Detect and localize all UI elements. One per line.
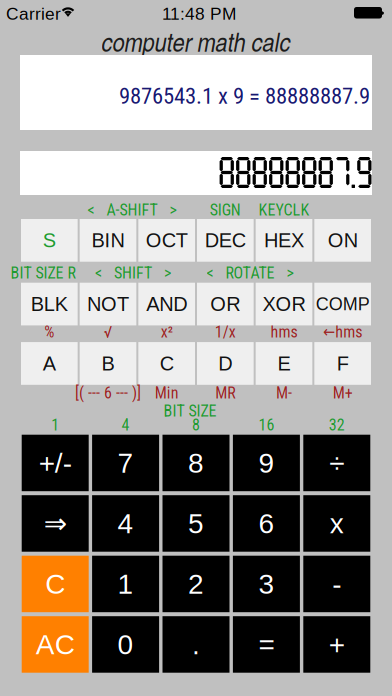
staticText: XOR [262, 293, 305, 315]
button[interactable]: ON [314, 219, 371, 262]
button[interactable]: 5 [162, 495, 229, 552]
staticText: ←hms [323, 323, 362, 341]
staticText: 4 [118, 508, 134, 539]
staticText: x [330, 508, 344, 539]
staticText: computer math calc [101, 23, 290, 59]
staticText: = [258, 629, 274, 660]
staticText: S [43, 229, 56, 251]
staticText: 1 [118, 568, 134, 600]
staticText: 4 [122, 416, 130, 434]
staticText: M+ [333, 384, 353, 402]
staticText: 8 [188, 447, 204, 479]
button[interactable]: HEX [256, 219, 312, 262]
button[interactable]: OR [197, 283, 254, 325]
staticText: Min [155, 384, 179, 402]
staticText: HEX [264, 229, 304, 251]
staticText: 2 [188, 568, 204, 600]
staticText: E [277, 352, 290, 375]
button[interactable]: ⇒ [22, 495, 89, 552]
button[interactable]: 6 [233, 495, 300, 552]
staticText: 9 [258, 447, 274, 479]
staticText: KEYCLK [258, 201, 309, 219]
button[interactable]: 7 [92, 435, 159, 491]
staticText: . [192, 629, 200, 660]
button[interactable]: + [303, 616, 370, 673]
button[interactable]: ÷ [303, 435, 370, 491]
button[interactable]: 1 [92, 556, 159, 612]
button[interactable]: 3 [233, 556, 300, 612]
button[interactable]: OCT [138, 219, 195, 262]
staticText: COMP [316, 294, 370, 314]
staticText: C [160, 352, 174, 375]
button[interactable]: - [303, 556, 370, 612]
staticText: SIGN [210, 201, 241, 219]
staticText: B [101, 352, 114, 375]
staticText: 6 [258, 508, 274, 539]
staticText: BIT SIZE R [10, 264, 75, 282]
button[interactable]: F [314, 342, 371, 385]
staticText: BIT SIZE [163, 402, 216, 420]
staticText: DEC [205, 229, 246, 251]
staticText: AC [36, 629, 75, 660]
staticText: OCT [146, 229, 188, 251]
button[interactable]: +/- [22, 435, 89, 491]
staticText: 11:48 PM [162, 4, 236, 23]
staticText: [( --- 6 --- )] [75, 384, 141, 402]
staticText: √ [103, 323, 112, 341]
button[interactable]: DEC [197, 219, 254, 262]
staticText: 32 [329, 416, 345, 434]
button[interactable]: B [80, 342, 136, 385]
staticText: 7 [118, 447, 134, 479]
staticText: + [329, 629, 345, 660]
staticText: % [44, 323, 54, 341]
button[interactable]: S [21, 219, 78, 262]
staticText: BIN [91, 229, 124, 251]
button[interactable]: 8 [162, 435, 229, 491]
button[interactable]: 4 [92, 495, 159, 552]
button[interactable]: 2 [162, 556, 229, 612]
staticText: M- [276, 384, 292, 402]
staticText: BLK [31, 293, 68, 315]
staticText: 16 [258, 416, 274, 434]
button[interactable]: C [138, 342, 195, 385]
button[interactable]: . [162, 616, 229, 673]
staticText: ÷ [329, 447, 344, 479]
staticText: 1/x [215, 323, 236, 341]
button[interactable]: COMP [314, 283, 371, 325]
button[interactable]: AC [22, 616, 89, 673]
staticText: 0 [118, 629, 134, 660]
staticText: AND [146, 293, 187, 315]
button[interactable]: E [256, 342, 312, 385]
button[interactable]: AND [138, 283, 195, 325]
button[interactable]: A [21, 342, 78, 385]
button[interactable]: BIN [80, 219, 136, 262]
staticText: 5 [188, 508, 204, 539]
button[interactable]: NOT [80, 283, 136, 325]
staticText: F [337, 352, 349, 375]
button[interactable]: D [197, 342, 254, 385]
staticText: < ROTATE > [206, 264, 293, 282]
staticText: 1 [51, 416, 59, 434]
staticText: C [45, 568, 65, 600]
button[interactable]: BLK [21, 283, 78, 325]
staticText: D [218, 352, 232, 375]
staticText: 8 [192, 416, 200, 434]
button[interactable]: C [22, 556, 89, 612]
button[interactable]: 9 [233, 435, 300, 491]
staticText: 3 [258, 568, 274, 600]
staticText: < SHIFT > [95, 264, 171, 282]
button[interactable]: = [233, 616, 300, 673]
staticText: x² [161, 323, 173, 341]
staticText: - [332, 568, 341, 600]
staticText: hms [270, 323, 297, 341]
button[interactable]: 0 [92, 616, 159, 673]
staticText: Carrier [6, 4, 61, 23]
staticText: 9876543.1 x 9 = 88888887.9 [119, 83, 370, 109]
staticText: NOT [87, 293, 129, 315]
staticText: ON [328, 229, 358, 251]
button[interactable]: XOR [256, 283, 312, 325]
button[interactable]: x [303, 495, 370, 552]
staticText: +/- [39, 447, 72, 479]
staticText: A [43, 352, 56, 375]
staticText: < A-SHIFT > [87, 201, 176, 219]
